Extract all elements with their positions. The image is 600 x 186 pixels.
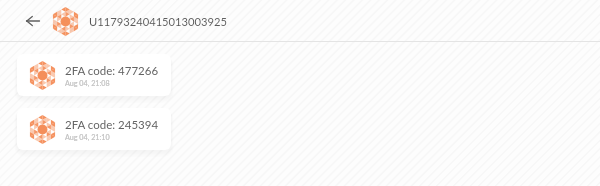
staticText: U11793240415013003925: [89, 15, 228, 28]
staticText: Aug 04, 21:08: [65, 79, 110, 88]
button[interactable]: 2FA code: 477266: [17, 54, 171, 96]
button[interactable]: Back: [24, 12, 42, 30]
button[interactable]: 2FA code: 245394: [17, 108, 171, 150]
staticText: Aug 04, 21:10: [65, 133, 110, 142]
staticText: 2FA code: 477266: [65, 64, 159, 78]
staticText: 2FA code: 245394: [65, 118, 159, 132]
